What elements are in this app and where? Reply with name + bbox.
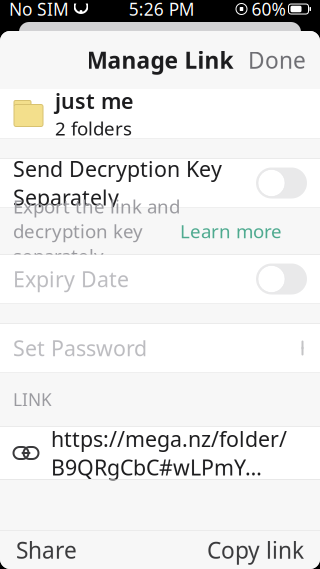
button[interactable]: Learn more	[180, 219, 282, 243]
staticText: Expiry Date	[13, 265, 129, 293]
staticText: No SIM	[9, 0, 69, 20]
staticText: https://mega.nz/folder/B9QRgCbC#wLPmY…	[51, 425, 287, 481]
staticText: LINK	[13, 388, 52, 411]
staticText: Send Decryption Key Separately	[13, 155, 222, 211]
button[interactable]: Set Password	[0, 324, 320, 372]
staticText: 2 folders	[55, 116, 132, 141]
button[interactable]: Share	[0, 525, 93, 569]
staticText: Set Password	[13, 334, 147, 362]
staticText: Learn more	[180, 219, 282, 243]
button[interactable]: just me	[0, 89, 320, 138]
staticText: just me	[55, 86, 133, 115]
staticText: Share	[16, 535, 77, 565]
staticText: Manage Link	[86, 45, 233, 75]
button[interactable]: Copy link	[191, 525, 320, 569]
button[interactable]: https://mega.nz/folder/B9QRgCbC#wLPmY…	[0, 427, 320, 479]
staticText: 5:26 PM	[129, 0, 195, 20]
staticText: Export the link and decryption key separ…	[13, 194, 180, 268]
staticText: Done	[248, 45, 306, 75]
button[interactable]: Expiry Date	[256, 263, 307, 294]
button[interactable]: Done	[234, 35, 320, 85]
staticText: 60%	[251, 0, 285, 20]
button[interactable]: Send Decryption Key Separately	[256, 167, 307, 198]
staticText: Copy link	[207, 535, 304, 565]
